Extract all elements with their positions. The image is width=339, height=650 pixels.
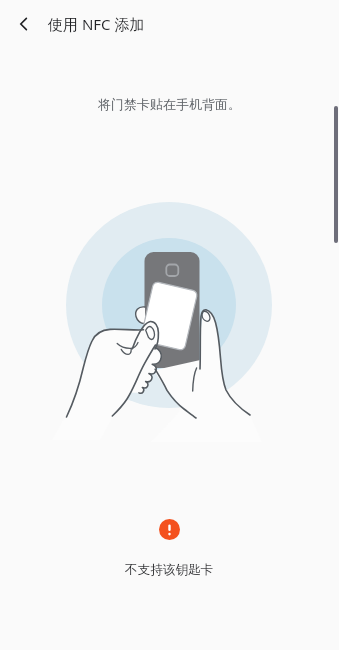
button[interactable]: Back — [0, 0, 48, 48]
staticText: 不支持该钥匙卡 — [125, 562, 214, 578]
staticText: 使用 NFC 添加 — [48, 14, 145, 34]
staticText: 将门禁卡贴在手机背面。 — [98, 96, 241, 112]
